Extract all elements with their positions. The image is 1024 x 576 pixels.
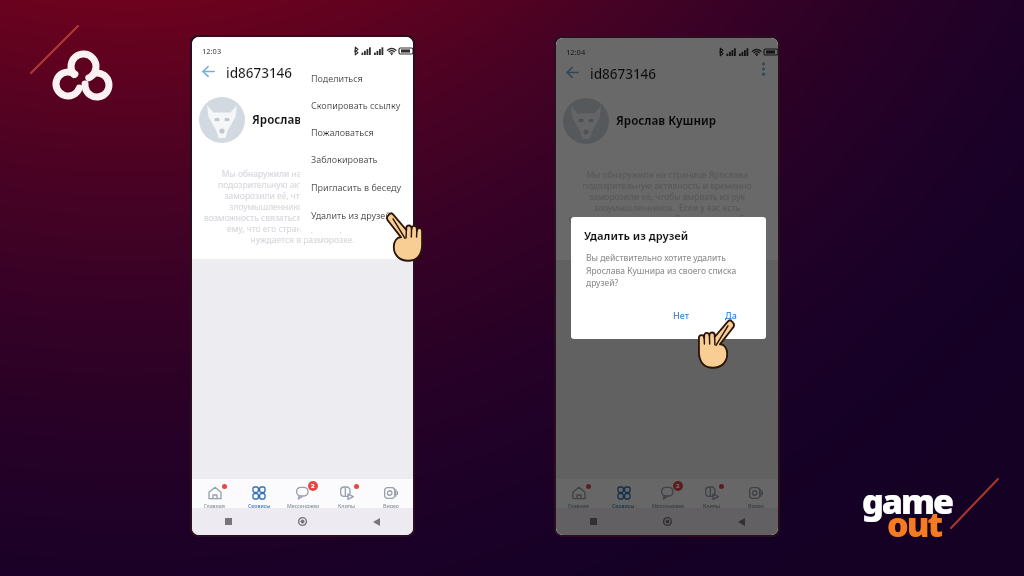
button[interactable]: Поделиться (300, 64, 413, 92)
button[interactable]: Home (265, 508, 339, 535)
staticText: Пожаловаться (311, 126, 374, 138)
staticText: out (887, 501, 942, 547)
button[interactable]: Скопировать ссылку (300, 91, 413, 119)
staticText: Мы обнаружили на странице Ярослава подоз… (200, 168, 405, 245)
button[interactable]: Back (704, 508, 778, 535)
staticText: Видео (383, 502, 399, 508)
staticText: Ярослав Кушнир (252, 112, 353, 128)
button[interactable]: 2 (281, 479, 325, 508)
staticText: 12:04 (566, 47, 586, 57)
button[interactable]: Recents (556, 508, 630, 535)
button[interactable]: Back (339, 508, 413, 535)
staticText: Скопировать ссылку (311, 99, 401, 111)
button[interactable]: Удалить из друзей (300, 201, 413, 229)
staticText: Клипы (338, 502, 356, 508)
staticText: id8673146 (226, 64, 293, 82)
button[interactable]: Нет (667, 305, 696, 325)
staticText: Мессенджер (287, 502, 320, 508)
staticText: Заблокировать (311, 153, 378, 165)
staticText: Вы действительно хотите удалить Ярослава… (586, 252, 737, 288)
staticText: Нет (673, 309, 690, 321)
staticText: Мы обнаружили на странице Ярослава подоз… (564, 169, 770, 246)
staticText: 2 (676, 482, 680, 490)
button[interactable]: Клипы (690, 479, 734, 508)
button[interactable]: Видео (734, 479, 778, 508)
button[interactable]: Recents (192, 508, 265, 535)
button[interactable]: Да (719, 305, 743, 325)
staticText: Главная (204, 502, 225, 508)
button[interactable]: More options (754, 60, 772, 78)
button[interactable]: Видео (369, 479, 413, 508)
staticText: 12:03 (202, 46, 222, 56)
button[interactable]: Back (560, 60, 584, 84)
staticText: Да (725, 309, 737, 321)
staticText: game (862, 478, 953, 524)
staticText: Видео (748, 502, 764, 508)
staticText: Удалить из друзей (584, 228, 689, 243)
staticText: Сервисы (248, 502, 271, 508)
staticText: Мессенджер (652, 502, 685, 508)
button[interactable]: Главная (192, 479, 237, 508)
button[interactable]: Back (196, 59, 220, 83)
button[interactable]: Главная (556, 479, 601, 508)
staticText: Пригласить в беседу (311, 181, 402, 193)
button[interactable]: Сервисы (601, 479, 646, 508)
staticText: Сервисы (612, 502, 635, 508)
button[interactable]: Пригласить в беседу (300, 173, 413, 201)
button[interactable]: Пожаловаться (300, 118, 413, 146)
staticText: Поделиться (311, 72, 363, 84)
button[interactable]: Home (630, 508, 704, 535)
button[interactable]: Заблокировать (300, 145, 413, 173)
staticText: Ярослав Кушнир (616, 113, 717, 129)
staticText: Главная (568, 502, 589, 508)
staticText: id8673146 (590, 65, 657, 83)
button[interactable]: Сервисы (237, 479, 281, 508)
staticText: Клипы (703, 502, 721, 508)
staticText: Удалить из друзей (311, 209, 391, 221)
staticText: 2 (311, 482, 315, 490)
button[interactable]: 2 (646, 479, 690, 508)
button[interactable]: Клипы (325, 479, 369, 508)
